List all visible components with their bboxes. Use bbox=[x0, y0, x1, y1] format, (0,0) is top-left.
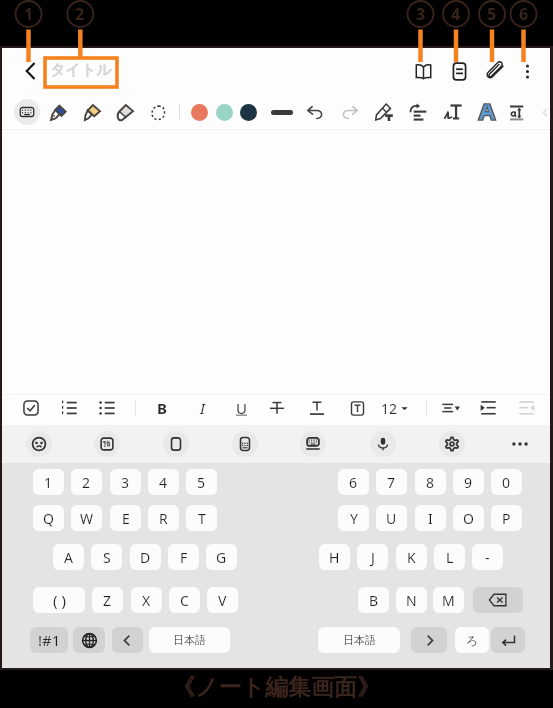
button[interactable]: O bbox=[453, 505, 484, 531]
button[interactable]: bksp bbox=[473, 587, 523, 613]
button[interactable]: B bbox=[358, 587, 389, 613]
button[interactable]: Underline style bbox=[304, 395, 330, 421]
staticText: L bbox=[446, 548, 454, 567]
button[interactable]: P bbox=[491, 505, 522, 531]
button[interactable]: J bbox=[357, 544, 388, 570]
button[interactable]: Settings bbox=[439, 431, 465, 457]
button[interactable]: Colour bbox=[240, 104, 257, 121]
button[interactable]: - bbox=[472, 544, 503, 570]
button[interactable]: Pen bbox=[45, 99, 71, 125]
button[interactable]: M bbox=[433, 587, 464, 613]
button[interactable]: 12 bbox=[378, 397, 411, 419]
button[interactable]: Script to text bbox=[439, 98, 467, 126]
button[interactable]: Numbered list bbox=[56, 395, 82, 421]
button[interactable]: prev bbox=[112, 627, 143, 653]
button[interactable]: ろ bbox=[455, 627, 489, 653]
staticText: 6 bbox=[519, 3, 529, 25]
staticText: F bbox=[180, 548, 188, 567]
button[interactable]: Alignment bbox=[437, 394, 465, 422]
button[interactable]: Bullet list bbox=[94, 395, 120, 421]
button[interactable]: F bbox=[168, 544, 199, 570]
button[interactable]: D bbox=[130, 544, 161, 570]
staticText: J bbox=[371, 548, 375, 567]
staticText: ろ bbox=[466, 633, 479, 648]
button[interactable]: C bbox=[169, 587, 200, 613]
button[interactable]: 7 bbox=[376, 469, 407, 495]
button[interactable]: I bbox=[415, 505, 446, 531]
button[interactable]: Lasso select bbox=[145, 99, 171, 125]
button[interactable]: R bbox=[148, 505, 179, 531]
button[interactable]: 日本語 bbox=[149, 627, 230, 653]
button[interactable]: Z bbox=[92, 587, 123, 613]
button[interactable]: Emoji bbox=[26, 431, 52, 457]
button[interactable]: !#1 bbox=[30, 627, 68, 653]
button[interactable]: Translate bbox=[94, 431, 120, 457]
button[interactable]: Convert handwriting bbox=[370, 98, 398, 126]
staticText: M bbox=[442, 591, 455, 610]
button[interactable]: 2 bbox=[71, 469, 102, 495]
button[interactable]: H bbox=[319, 544, 350, 570]
button[interactable]: Y bbox=[338, 505, 369, 531]
button[interactable]: N bbox=[396, 587, 427, 613]
button[interactable]: S bbox=[91, 544, 122, 570]
button[interactable]: 1 bbox=[33, 469, 64, 495]
button[interactable]: More bbox=[507, 431, 533, 457]
button[interactable]: I bbox=[191, 397, 213, 419]
button[interactable]: L bbox=[434, 544, 465, 570]
staticText: 4 bbox=[451, 3, 461, 25]
button[interactable]: enter bbox=[491, 627, 525, 653]
button[interactable]: E bbox=[110, 505, 141, 531]
staticText: 2 bbox=[75, 3, 85, 25]
button[interactable]: More options bbox=[514, 58, 540, 84]
button[interactable]: Stroke thickness bbox=[270, 102, 294, 122]
button[interactable]: Back bbox=[14, 55, 46, 87]
button[interactable]: globe bbox=[73, 627, 105, 653]
button[interactable]: 8 bbox=[415, 469, 446, 495]
button[interactable]: Shape recognition bbox=[473, 98, 501, 126]
button[interactable]: Straighten text bbox=[404, 98, 432, 126]
button[interactable]: B bbox=[151, 397, 173, 419]
button[interactable]: Highlighter bbox=[79, 99, 105, 125]
button[interactable]: Eraser bbox=[112, 99, 138, 125]
button[interactable]: Attach bbox=[480, 56, 510, 86]
button[interactable]: 0 bbox=[491, 469, 522, 495]
button[interactable]: Floating keyboard bbox=[300, 431, 326, 457]
button[interactable]: Undo bbox=[301, 98, 329, 126]
button[interactable]: next bbox=[411, 627, 447, 653]
button[interactable]: G bbox=[206, 544, 237, 570]
button[interactable]: Keypad bbox=[232, 431, 258, 457]
button[interactable]: V bbox=[207, 587, 238, 613]
button[interactable]: Reading view bbox=[408, 56, 438, 86]
staticText: 1 bbox=[44, 473, 53, 492]
button[interactable]: 5 bbox=[186, 469, 217, 495]
button[interactable]: Note list bbox=[444, 56, 474, 86]
button[interactable]: 3 bbox=[110, 469, 141, 495]
button[interactable]: Keyboard bbox=[14, 99, 40, 125]
button[interactable]: A bbox=[53, 544, 84, 570]
button[interactable]: Q bbox=[33, 505, 64, 531]
button[interactable]: Redo bbox=[336, 98, 364, 126]
button[interactable]: 4 bbox=[148, 469, 179, 495]
button[interactable]: Voice input bbox=[370, 431, 396, 457]
button[interactable]: W bbox=[71, 505, 102, 531]
button[interactable]: 日本語 bbox=[318, 627, 400, 653]
button[interactable]: Checkbox list bbox=[18, 395, 44, 421]
button[interactable]: K bbox=[396, 544, 427, 570]
button[interactable]: More tools bbox=[535, 102, 553, 122]
button[interactable]: Colour bbox=[191, 104, 208, 121]
button[interactable]: Decrease indent bbox=[514, 395, 540, 421]
button[interactable]: Clipboard bbox=[163, 431, 189, 457]
button[interactable]: Increase indent bbox=[475, 395, 501, 421]
staticText: 6 bbox=[349, 473, 358, 492]
button[interactable]: Text size bbox=[504, 99, 530, 125]
button[interactable]: U bbox=[376, 505, 407, 531]
button[interactable]: ( ) bbox=[33, 587, 85, 613]
button[interactable]: X bbox=[131, 587, 162, 613]
button[interactable]: 9 bbox=[453, 469, 484, 495]
button[interactable]: 6 bbox=[338, 469, 369, 495]
button[interactable]: Strikethrough bbox=[264, 395, 290, 421]
button[interactable]: Text box bbox=[344, 395, 370, 421]
button[interactable]: Colour bbox=[216, 104, 233, 121]
button[interactable]: T bbox=[186, 505, 217, 531]
button[interactable]: U bbox=[230, 397, 252, 419]
